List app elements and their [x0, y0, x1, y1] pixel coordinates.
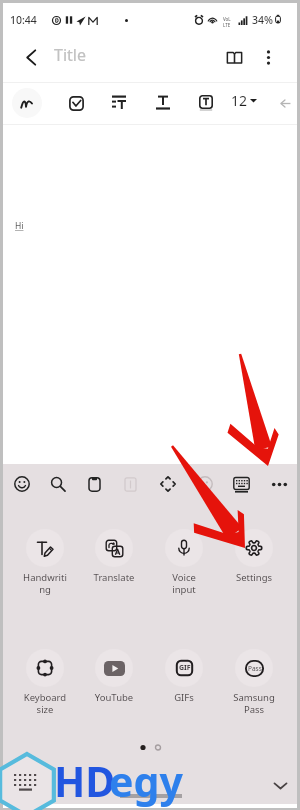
button[interactable]: Settings [220, 529, 288, 584]
button[interactable]: 12 [229, 91, 259, 110]
button[interactable]: Voice input [150, 529, 218, 596]
button[interactable]: Clipboard [79, 469, 109, 499]
button[interactable]: GIFs [150, 649, 218, 704]
button[interactable]: Samsung Pass [220, 649, 288, 716]
staticText: Title [54, 44, 86, 66]
staticText: Samsung Pass [220, 691, 288, 716]
button[interactable]: Handwriting [11, 529, 79, 596]
button[interactable]: Hide keyboard [265, 770, 295, 800]
button[interactable]: Resize [153, 469, 183, 499]
staticText: Pass [248, 664, 262, 673]
button[interactable]: Sticker [190, 469, 220, 499]
button[interactable]: Search [43, 469, 73, 499]
staticText: VoL [223, 16, 231, 22]
button[interactable]: Paragraph style [104, 88, 134, 118]
staticText: 34% [252, 13, 273, 27]
button[interactable]: YouTube [80, 649, 148, 704]
staticText: egy [109, 753, 183, 809]
staticText: Handwriti ng [11, 571, 79, 596]
staticText: YouTube [80, 691, 148, 704]
button[interactable]: More options [264, 469, 294, 499]
button[interactable]: Pen [12, 88, 42, 118]
staticText: 10:44 [10, 13, 37, 27]
staticText: Keyboard size [11, 691, 79, 716]
button[interactable]: Text color [191, 88, 221, 118]
button[interactable]: Reading view [214, 37, 254, 77]
staticText: GIF [179, 663, 191, 673]
button[interactable]: Text format [148, 88, 178, 118]
staticText: Settings [220, 571, 288, 584]
button[interactable]: Keyboard size [11, 649, 79, 716]
staticText: Hi [15, 220, 24, 232]
staticText: GIFs [150, 691, 218, 704]
staticText: HD [54, 753, 116, 809]
button[interactable]: Emoji [7, 469, 37, 499]
button[interactable]: Collapse toolbar [274, 92, 296, 114]
button[interactable]: Keyboard [226, 469, 256, 499]
staticText: LTE [223, 22, 231, 28]
button[interactable]: More options [248, 37, 288, 77]
button[interactable]: Translate [80, 529, 148, 584]
staticText: Voice input [150, 571, 218, 596]
button[interactable]: Keyboard layout [11, 770, 41, 800]
button[interactable]: Checklist [61, 88, 91, 118]
button[interactable]: Modes [115, 469, 145, 499]
staticText: 12 [231, 91, 248, 110]
button[interactable]: Back [11, 37, 51, 77]
staticText: Translate [80, 571, 148, 584]
